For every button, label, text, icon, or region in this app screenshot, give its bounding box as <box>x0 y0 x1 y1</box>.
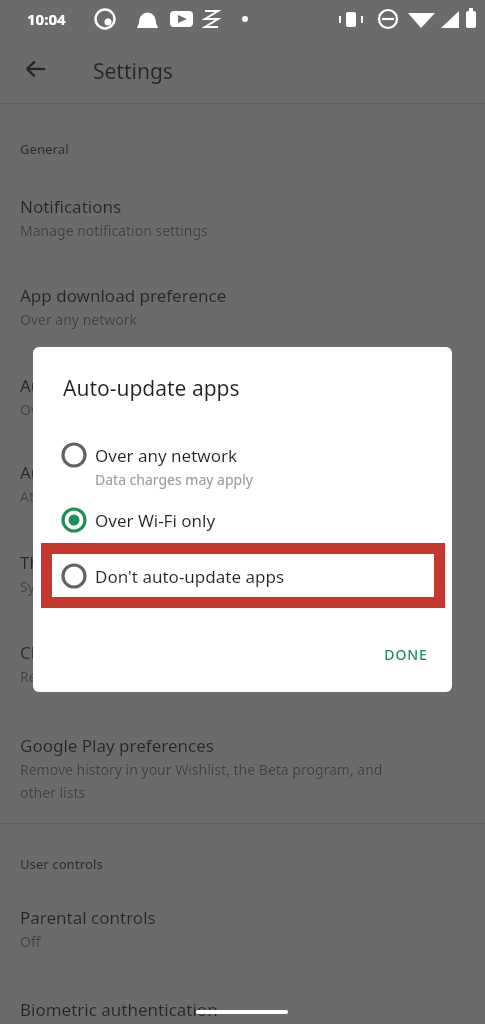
button[interactable] <box>0 451 485 507</box>
button[interactable]: Over any network <box>33 425 452 489</box>
button[interactable] <box>0 631 485 687</box>
staticText: Auto-update apps <box>63 374 240 403</box>
button[interactable] <box>0 724 485 804</box>
button[interactable] <box>0 896 485 952</box>
staticText: Parental controls <box>20 906 156 929</box>
staticText: DONE <box>384 645 428 664</box>
staticText: Don't auto-update apps <box>95 565 285 588</box>
staticText: Over any network <box>20 310 137 329</box>
staticText: Biometric authentication <box>20 998 218 1021</box>
staticText: other lists <box>20 783 86 802</box>
staticText: Over Wi-Fi only <box>95 509 216 532</box>
staticText: Auto-play videos <box>20 461 153 484</box>
staticText: Theme <box>20 551 76 574</box>
button[interactable] <box>0 274 485 330</box>
button[interactable]: Over Wi-Fi only <box>33 497 452 543</box>
staticText: Google Play preferences <box>20 734 214 757</box>
staticText: Notifications <box>20 195 122 218</box>
staticText: Over any network <box>95 444 238 467</box>
staticText: At all times <box>20 487 93 506</box>
staticText: Off <box>20 932 41 951</box>
staticText: User controls <box>20 855 103 873</box>
staticText: Auto-update apps <box>20 374 163 397</box>
staticText: Clear local search history <box>20 641 220 664</box>
staticText: Settings <box>93 57 173 86</box>
button[interactable] <box>0 364 485 420</box>
staticText: Over Wi-Fi only <box>20 400 119 419</box>
button[interactable]: Back <box>12 45 60 93</box>
staticText: Remove history in your Wishlist, the Bet… <box>20 760 383 779</box>
staticText: Manage notification settings <box>20 221 208 240</box>
button[interactable] <box>0 541 485 597</box>
staticText: General <box>20 140 69 158</box>
button[interactable]: Don't auto-update apps <box>41 543 445 608</box>
staticText: 10:04 <box>27 9 66 29</box>
button[interactable] <box>0 185 485 241</box>
staticText: System default <box>20 577 118 596</box>
staticText: Remove searches <box>20 667 135 686</box>
button[interactable]: DONE <box>373 635 439 673</box>
staticText: App download preference <box>20 284 227 307</box>
staticText: Data charges may apply <box>95 470 253 489</box>
